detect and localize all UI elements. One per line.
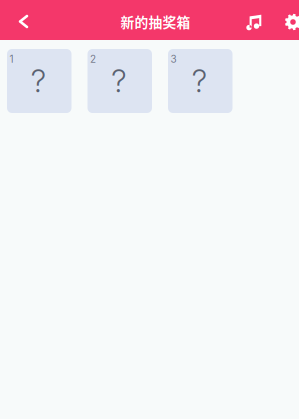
button[interactable]: ? [87,49,152,113]
staticText: ? [111,62,126,99]
staticText: 3 [170,53,176,65]
staticText: ? [192,62,207,99]
staticText: 1 [9,53,13,65]
staticText: 2 [90,53,96,65]
button[interactable]: Settings [278,0,299,40]
staticText: 新的抽奖箱 [120,12,190,31]
button[interactable]: ? [7,49,71,113]
button[interactable]: Back [5,0,42,40]
staticText: ? [31,62,46,99]
button[interactable]: ? [168,49,232,113]
button[interactable]: Music [231,0,278,40]
